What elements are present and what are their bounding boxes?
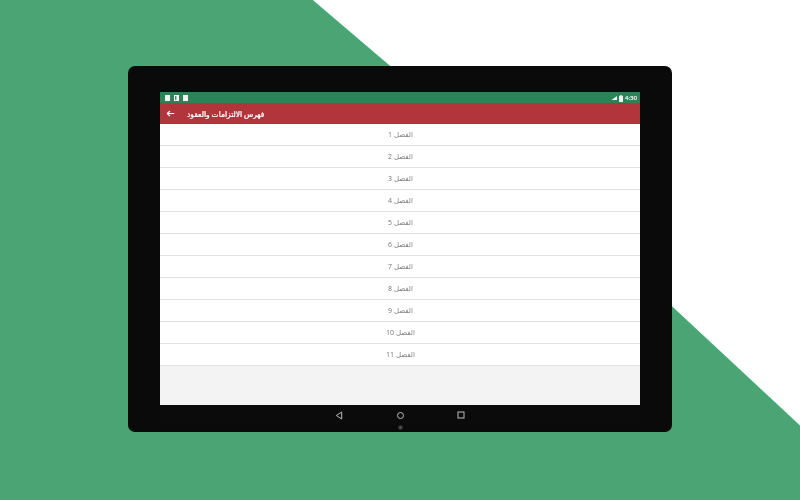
button[interactable]: الفصل 2 xyxy=(160,146,640,168)
button[interactable]: الفصل 9 xyxy=(160,300,640,322)
button[interactable]: Recent apps xyxy=(450,405,472,425)
button[interactable]: الفصل 11 xyxy=(160,344,640,366)
staticText: الفصل 2 xyxy=(388,152,413,162)
button[interactable]: الفصل 6 xyxy=(160,234,640,256)
staticText: الفصل 8 xyxy=(388,284,413,294)
button[interactable]: الفصل 4 xyxy=(160,190,640,212)
button[interactable]: الفصل 7 xyxy=(160,256,640,278)
button[interactable]: الفصل 8 xyxy=(160,278,640,300)
staticText: فهرس الالتزامات والعقود xyxy=(187,109,265,119)
staticText: الفصل 3 xyxy=(388,174,413,184)
staticText: الفصل 4 xyxy=(388,196,413,206)
button[interactable]: الفصل 1 xyxy=(160,124,640,146)
staticText: الفصل 5 xyxy=(388,218,413,228)
staticText: الفصل 11 xyxy=(386,350,415,360)
button[interactable]: الفصل 3 xyxy=(160,168,640,190)
button[interactable]: الفصل 5 xyxy=(160,212,640,234)
button[interactable]: الفصل 10 xyxy=(160,322,640,344)
button[interactable]: Back xyxy=(328,405,350,425)
staticText: الفصل 1 xyxy=(388,130,413,140)
staticText: الفصل 6 xyxy=(388,240,413,250)
staticText: الفصل 7 xyxy=(388,262,413,272)
button[interactable]: Home xyxy=(389,405,411,425)
button[interactable]: Back xyxy=(160,103,181,124)
staticText: الفصل 9 xyxy=(388,306,413,316)
staticText: 4:30 xyxy=(625,94,637,102)
staticText: الفصل 10 xyxy=(386,328,415,338)
